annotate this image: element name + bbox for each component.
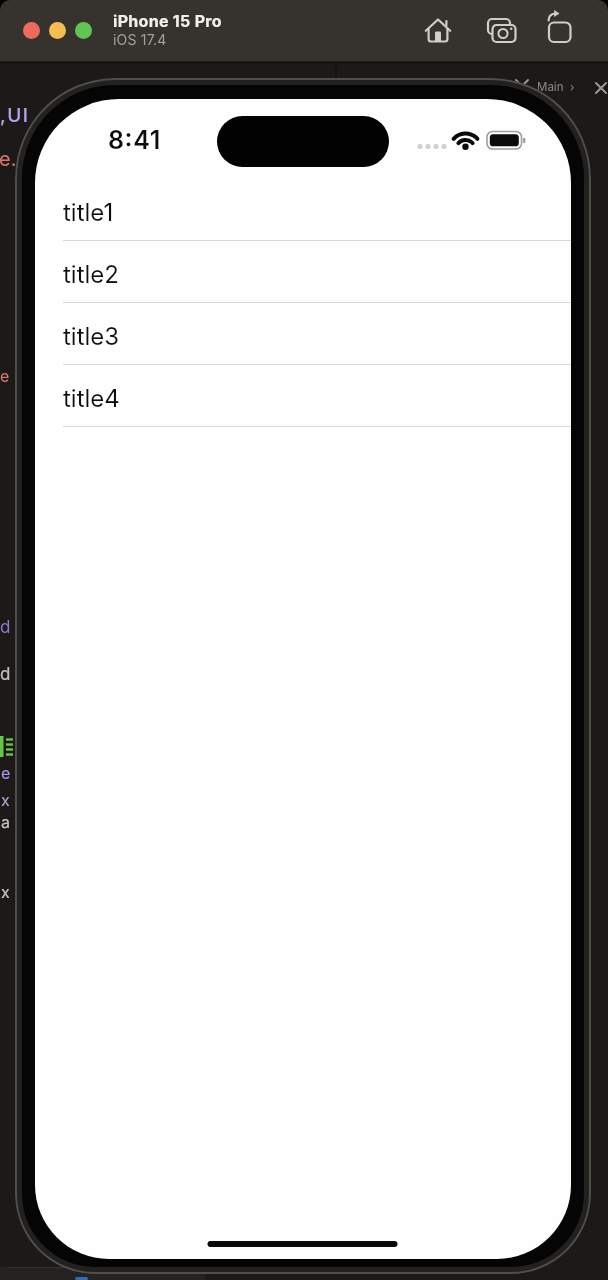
staticText: x [1,790,10,809]
staticText: a [1,812,10,831]
staticText: title3 [63,322,120,351]
button[interactable]: title2 [35,241,571,303]
staticText: e [1,763,11,782]
button[interactable]: title3 [35,303,571,365]
staticText: ,UI [0,104,30,127]
staticText: title2 [63,260,119,289]
button[interactable] [75,22,92,39]
button[interactable] [424,16,452,44]
staticText: title4 [63,384,120,413]
button[interactable]: title4 [35,365,571,427]
staticText: e. [0,147,17,171]
staticText: Main › [537,80,575,94]
button[interactable]: title1 [35,179,571,241]
staticText: iOS 17.4 [113,31,167,48]
staticText: e [0,366,10,385]
button[interactable] [546,14,574,42]
staticText: 8:41 [108,125,161,154]
button[interactable] [49,22,66,39]
staticText: iPhone 15 Pro [113,11,222,30]
staticText: d [0,617,11,638]
staticText: d [0,664,11,685]
staticText: x [1,882,10,901]
button[interactable] [23,22,40,39]
button[interactable] [487,15,517,45]
staticText: title1 [63,198,114,227]
